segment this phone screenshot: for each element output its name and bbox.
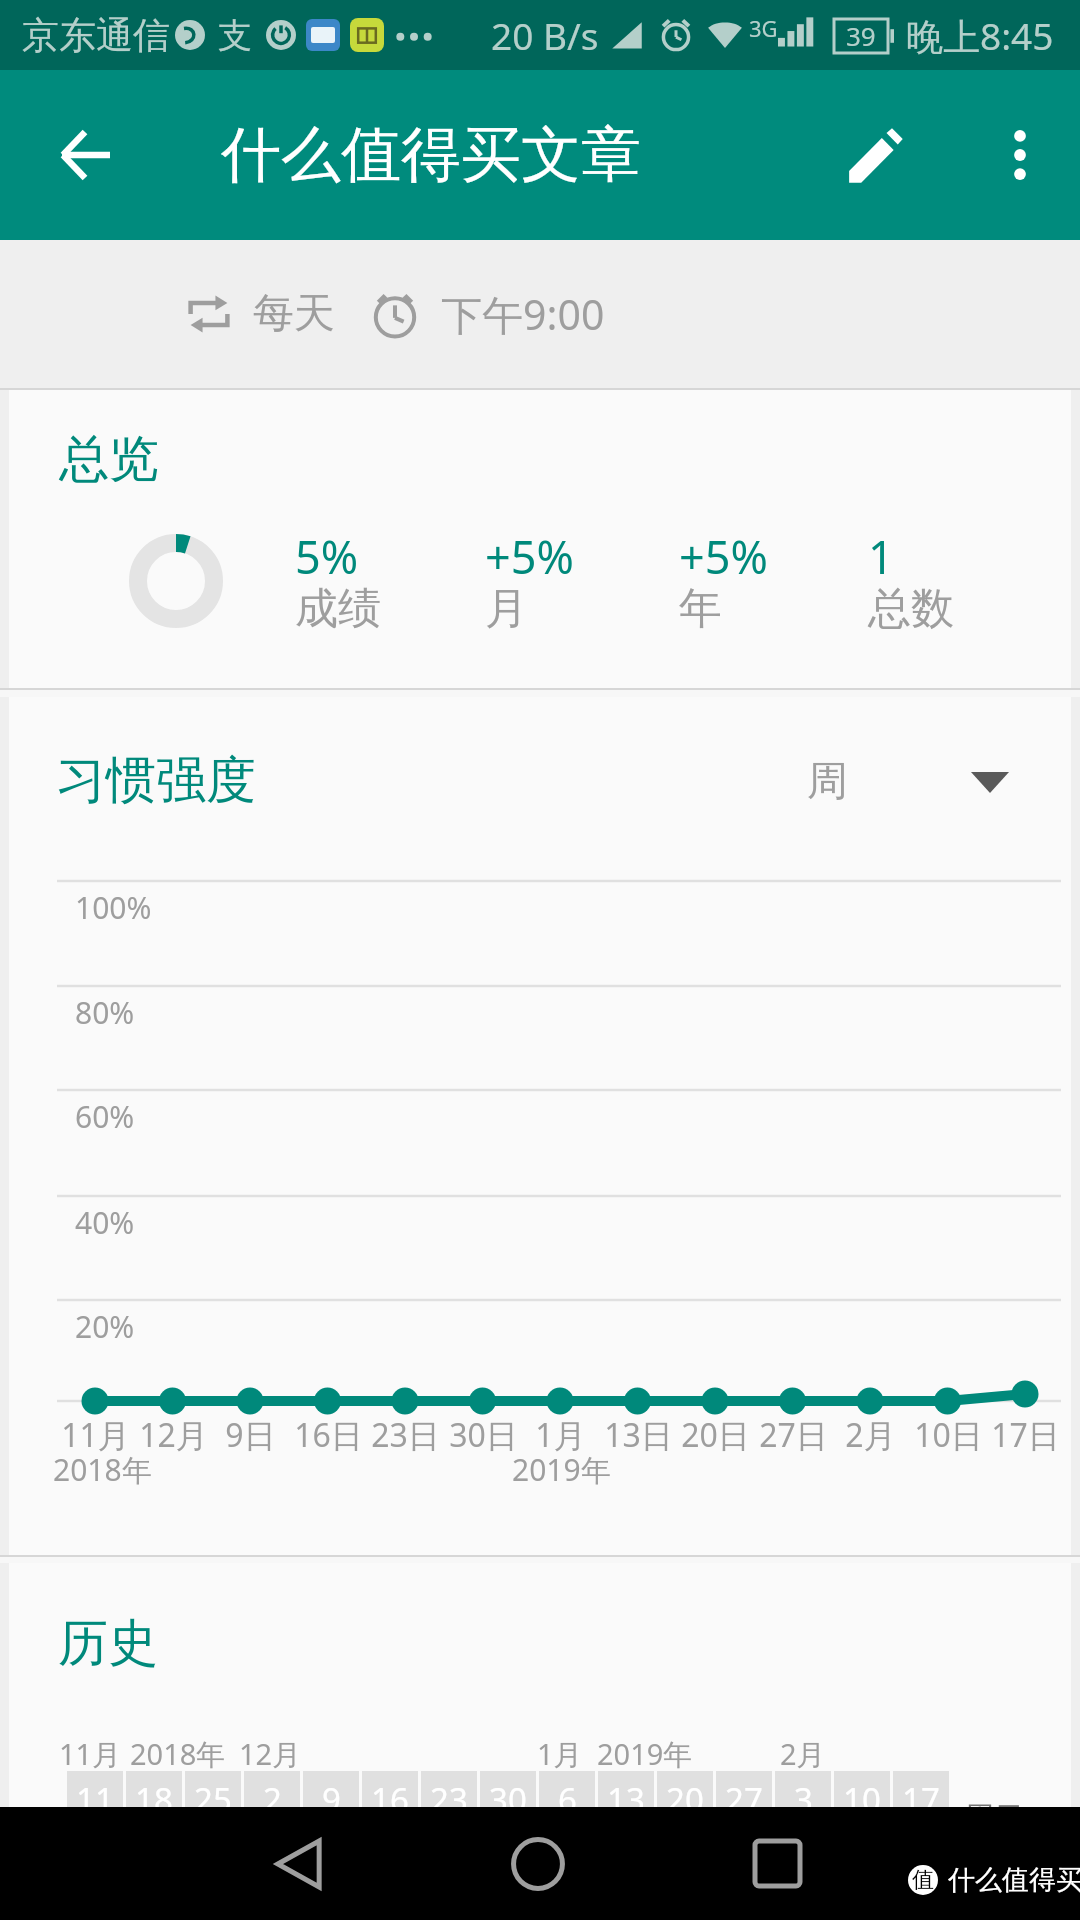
staticText: 23日 xyxy=(371,1413,440,1457)
staticText: 30日 xyxy=(449,1413,518,1457)
staticText: 3 xyxy=(794,1777,813,1822)
staticText: 什么值得买 xyxy=(948,1863,1080,1897)
staticText: 2019年 xyxy=(512,1449,611,1490)
staticText: 2019年 xyxy=(597,1734,693,1774)
staticText: 晚上8:45 xyxy=(906,10,1054,61)
staticText: 周日 xyxy=(964,1799,1024,1837)
staticText: 年 xyxy=(679,582,722,636)
staticText: 5% xyxy=(295,526,359,587)
staticText: 100% xyxy=(75,887,152,928)
button[interactable]: Home xyxy=(483,1807,593,1920)
button[interactable]: Edit xyxy=(810,70,940,240)
staticText: 11月 xyxy=(61,1413,130,1457)
staticText: 12月 xyxy=(139,1413,208,1457)
staticText: 值 xyxy=(912,1866,934,1894)
staticText: 10日 xyxy=(914,1413,983,1457)
staticText: 13 xyxy=(607,1777,645,1822)
staticText: 1月 xyxy=(537,1734,583,1774)
staticText: +5% xyxy=(679,526,768,587)
staticText: 每天 xyxy=(253,288,335,340)
staticText: 20% xyxy=(75,1306,135,1347)
button[interactable]: 每天 xyxy=(0,240,1080,388)
staticText: 20 xyxy=(666,1777,704,1822)
staticText: 总览 xyxy=(59,428,159,491)
staticText: 历史 xyxy=(58,1612,158,1675)
staticText: 3G xyxy=(749,13,778,43)
staticText: 17日 xyxy=(991,1413,1060,1457)
staticText: 2018年 xyxy=(53,1449,152,1490)
staticText: 9日 xyxy=(225,1413,276,1457)
staticText: 支 xyxy=(218,14,252,57)
staticText: 11月 xyxy=(59,1734,122,1774)
staticText: 20日 xyxy=(681,1413,750,1457)
staticText: 12月 xyxy=(239,1734,302,1774)
staticText: 什么值得买文章 xyxy=(221,117,641,193)
staticText: 京东通信 xyxy=(22,12,170,59)
staticText: 16日 xyxy=(294,1413,363,1457)
staticText: 30 xyxy=(489,1777,527,1822)
staticText: 9 xyxy=(322,1777,341,1822)
button[interactable]: More options xyxy=(960,70,1080,240)
staticText: 60% xyxy=(75,1096,135,1137)
staticText: +5% xyxy=(485,526,574,587)
staticText: 11 xyxy=(76,1777,114,1822)
staticText: 25 xyxy=(194,1777,232,1822)
staticText: 39 xyxy=(846,18,876,53)
staticText: 月 xyxy=(485,582,528,636)
staticText: 2月 xyxy=(780,1734,826,1774)
staticText: 80% xyxy=(75,992,135,1033)
button[interactable]: Back xyxy=(12,70,158,240)
staticText: 18 xyxy=(135,1777,173,1822)
staticText: 10 xyxy=(843,1777,881,1822)
staticText: 总数 xyxy=(868,582,954,636)
staticText: 习惯强度 xyxy=(56,749,256,812)
staticText: 27日 xyxy=(759,1413,828,1457)
staticText: 16 xyxy=(371,1777,409,1822)
staticText: 17 xyxy=(902,1777,940,1822)
staticText: 1月 xyxy=(535,1413,586,1457)
staticText: 23 xyxy=(430,1777,468,1822)
staticText: 6 xyxy=(558,1777,577,1822)
button[interactable]: Back xyxy=(244,1807,354,1920)
staticText: 2 xyxy=(263,1777,282,1822)
staticText: 下午9:00 xyxy=(441,286,605,342)
staticText: 27 xyxy=(725,1777,763,1822)
staticText: 20 B/s xyxy=(491,10,599,60)
button[interactable]: 周 xyxy=(799,742,1049,822)
staticText: 40% xyxy=(75,1202,135,1243)
staticText: 周 xyxy=(807,756,848,808)
staticText: 1 xyxy=(868,526,894,587)
staticText: 成绩 xyxy=(295,582,381,636)
button[interactable]: Recents xyxy=(722,1807,832,1920)
staticText: 2月 xyxy=(845,1413,896,1457)
staticText: 2018年 xyxy=(130,1734,226,1774)
staticText: 13日 xyxy=(604,1413,673,1457)
